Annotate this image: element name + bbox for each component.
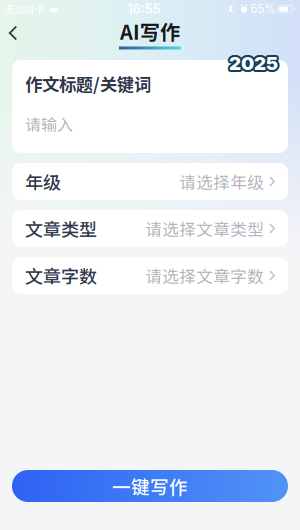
staticText: 文章字数 (25, 262, 97, 289)
staticText: 请选择文章字数 (145, 263, 264, 287)
staticText: 2025 (231, 52, 280, 75)
staticText: 2025 (227, 52, 276, 75)
staticText: 2025 (230, 50, 279, 73)
staticText: 2025 (229, 52, 278, 75)
staticText: 无SIM卡 (4, 1, 45, 17)
staticText: 2025 (231, 51, 280, 74)
staticText: 请输入 (25, 112, 73, 135)
staticText: 年级 (25, 168, 61, 195)
button[interactable]: 文章字数 (12, 257, 288, 294)
staticText: 文章类型 (25, 215, 97, 242)
staticText: 16:55 (127, 1, 160, 17)
button[interactable]: Back (0, 18, 26, 48)
staticText: 2025 (228, 50, 277, 73)
staticText: 作文标题/关键词 (25, 71, 151, 96)
staticText: 2025 (231, 53, 280, 76)
button[interactable]: 文章类型 (12, 210, 288, 247)
staticText: 一键写作 (112, 472, 188, 499)
staticText: 2025 (229, 50, 278, 73)
staticText: 2025 (227, 51, 276, 74)
button[interactable]: 年级 (12, 163, 288, 200)
staticText: 2025 (228, 54, 277, 76)
staticText: AI写作 (120, 16, 180, 45)
staticText: 2025 (227, 53, 276, 76)
staticText: 2025 (229, 54, 278, 77)
staticText: 2025 (230, 54, 279, 76)
staticText: 请选择文章类型 (145, 216, 264, 240)
staticText: 65% (250, 2, 275, 16)
button[interactable]: 一键写作 (12, 470, 288, 502)
staticText: 请选择年级 (179, 169, 264, 193)
